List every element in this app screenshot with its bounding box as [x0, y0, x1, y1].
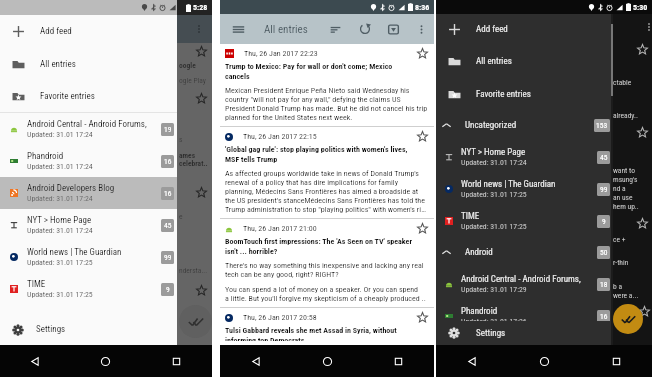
button[interactable]: Back — [436, 345, 508, 377]
button[interactable]: Add feed — [0, 15, 177, 48]
staticText: r-thin — [613, 258, 629, 267]
button[interactable]: Thu, 26 Jan 2017 22:23 — [220, 44, 434, 126]
button[interactable]: More options — [408, 14, 434, 44]
staticText: All entries — [40, 59, 76, 70]
button[interactable]: Home — [292, 345, 363, 377]
staticText: 8:36 — [415, 3, 430, 12]
button[interactable]: Recents — [363, 345, 434, 377]
staticText: Phandroid — [27, 151, 64, 162]
staticText: ndersta... — [179, 266, 208, 275]
button[interactable]: Mark all as read — [613, 304, 643, 334]
staticText: 50 — [600, 248, 608, 257]
button[interactable]: Add feed — [436, 14, 611, 45]
button[interactable]: Favorite — [415, 48, 429, 59]
staticText: 16 — [164, 157, 172, 166]
staticText: 5:28 — [193, 3, 208, 12]
button[interactable]: Settings — [436, 321, 611, 345]
button[interactable]: World news | The Guardian — [0, 241, 177, 273]
staticText: an use — [613, 193, 633, 202]
staticText: Android Developers Blog — [27, 183, 115, 194]
staticText: 19 — [164, 125, 172, 134]
staticText: 9 — [602, 217, 606, 226]
staticText: 99 — [164, 253, 172, 262]
button[interactable]: Back — [0, 345, 70, 377]
staticText: 99 — [600, 185, 608, 194]
button[interactable]: NYT > Home Page — [436, 141, 611, 173]
button[interactable]: Phandroid — [0, 145, 177, 177]
staticText: celebrat.. — [179, 159, 208, 168]
staticText: 16 — [164, 189, 172, 198]
button[interactable]: Android — [436, 237, 611, 268]
button[interactable]: Thu, 26 Jan 2017 20:58 — [220, 308, 434, 345]
button[interactable]: TIME — [0, 273, 177, 305]
staticText: Updated: 31.01 17:29 — [461, 285, 527, 294]
staticText: 153 — [596, 121, 608, 130]
button[interactable]: Favorite — [415, 131, 429, 142]
button[interactable]: Mark all as read — [179, 305, 212, 338]
button[interactable]: Mark all as read — [379, 14, 408, 44]
button[interactable]: Home — [70, 345, 141, 377]
staticText: All entries — [264, 23, 308, 36]
staticText: Updated: 31.01 17:24 — [27, 226, 93, 235]
staticText: ames — [179, 151, 196, 160]
button[interactable]: Uncategorized — [436, 110, 611, 141]
staticText: Phandroid — [461, 306, 498, 317]
button[interactable]: All entries — [436, 45, 611, 78]
button[interactable]: Favorite — [415, 223, 429, 234]
button[interactable]: Home — [508, 345, 580, 377]
staticText: NYT > Home Page — [27, 215, 92, 226]
staticText: Thu, 26 Jan 2017 22:23 — [244, 49, 318, 58]
staticText: Thu, 26 Jan 2017 21:00 — [243, 224, 317, 233]
staticText: Updated: 31.01 17:24 — [461, 158, 527, 167]
button[interactable]: TIME — [436, 205, 611, 237]
staticText: msung's — [613, 175, 638, 184]
staticText: World news | The Guardian — [461, 179, 556, 190]
staticText: Uncategorized — [465, 120, 517, 131]
staticText: Thu, 26 Jan 2017 22:15 — [243, 132, 317, 141]
staticText: Settings — [36, 324, 66, 335]
staticText: Add feed — [476, 24, 508, 35]
staticText: 45 — [164, 221, 172, 230]
button[interactable]: Thu, 26 Jan 2017 22:15 — [220, 127, 434, 218]
button[interactable]: Android Central - Android Forums, — [0, 113, 177, 145]
button[interactable]: Sort — [321, 14, 350, 44]
button[interactable]: Recents — [141, 345, 212, 377]
button[interactable]: Back — [220, 345, 292, 377]
button[interactable]: Settings — [0, 314, 177, 345]
staticText: hem up.. — [613, 202, 639, 211]
staticText: ctable — [613, 78, 632, 87]
staticText: want to — [613, 166, 635, 175]
staticText: As affected groups worldwide take in new… — [225, 169, 426, 214]
button[interactable]: Engadget — [436, 332, 611, 345]
button[interactable]: All entries — [0, 48, 177, 80]
button[interactable]: Refresh — [350, 14, 379, 44]
button[interactable]: NYT > Home Page — [0, 209, 177, 241]
staticText: Updated: 31.01 17:25 — [461, 222, 527, 231]
button[interactable]: Thu, 26 Jan 2017 21:00 — [220, 219, 434, 307]
button[interactable]: Android Developers Blog — [0, 177, 177, 209]
button[interactable]: Recents — [580, 345, 652, 377]
staticText: e — [179, 212, 183, 221]
staticText: You can spend a lot of money on a speake… — [225, 285, 426, 303]
button[interactable]: Favorite — [415, 312, 429, 323]
staticText: Thu, 26 Jan 2017 20:58 — [243, 313, 317, 322]
staticText: TIME — [461, 211, 480, 222]
staticText: Add feed — [40, 26, 72, 37]
staticText: Updated: 31.01 17:25 — [27, 258, 93, 267]
button[interactable]: World news | The Guardian — [436, 173, 611, 205]
button[interactable]: Phandroid — [436, 300, 611, 332]
staticText: Settings — [476, 328, 506, 339]
button[interactable]: Favorite entries — [0, 80, 177, 112]
button[interactable]: Favorite entries — [436, 78, 611, 110]
staticText: Mexican President Enrique Peña Nieto sai… — [225, 86, 428, 122]
button[interactable]: Open navigation drawer — [220, 14, 256, 44]
staticText: 45 — [600, 153, 608, 162]
staticText: ogle Play — [179, 76, 206, 85]
staticText: were a... — [613, 291, 639, 300]
staticText: Updated: 31.01 17:25 — [461, 190, 527, 199]
staticText: NYT > Home Page — [461, 147, 526, 158]
button[interactable]: Android Central - Android Forums, — [436, 268, 611, 300]
staticText: already.. — [613, 111, 639, 120]
